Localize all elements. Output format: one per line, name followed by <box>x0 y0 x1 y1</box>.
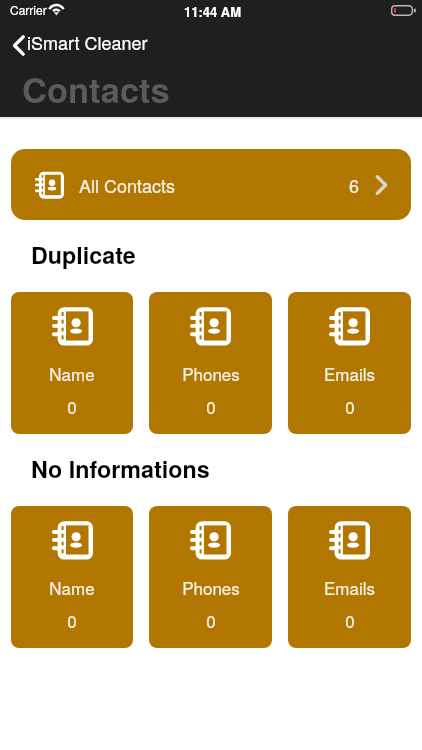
button[interactable]: Name <box>11 506 133 648</box>
staticText: 0 <box>206 608 216 632</box>
staticText: 0 <box>67 394 77 418</box>
staticText: 11:44 AM <box>184 2 242 21</box>
staticText: Phones <box>182 575 240 599</box>
staticText: Emails <box>324 361 375 385</box>
staticText: All Contacts <box>79 172 176 198</box>
staticText: Name <box>49 575 95 599</box>
staticText: Contacts <box>22 64 170 113</box>
button[interactable]: iSmart Cleaner <box>3 26 158 58</box>
staticText: Duplicate <box>31 238 136 271</box>
button[interactable]: Phones <box>149 292 272 434</box>
staticText: 6 <box>349 172 360 198</box>
staticText: Name <box>49 361 95 385</box>
staticText: Emails <box>324 575 375 599</box>
button[interactable]: Emails <box>288 292 411 434</box>
staticText: No Informations <box>31 452 210 485</box>
staticText: 0 <box>206 394 216 418</box>
button[interactable]: Emails <box>288 506 411 648</box>
staticText: Phones <box>182 361 240 385</box>
staticText: 0 <box>67 608 77 632</box>
staticText: 0 <box>345 394 355 418</box>
button[interactable]: All Contacts <box>11 149 411 220</box>
staticText: 0 <box>345 608 355 632</box>
staticText: iSmart Cleaner <box>27 29 148 55</box>
button[interactable]: Name <box>11 292 133 434</box>
staticText: Carrier <box>10 1 47 18</box>
button[interactable]: Phones <box>149 506 272 648</box>
